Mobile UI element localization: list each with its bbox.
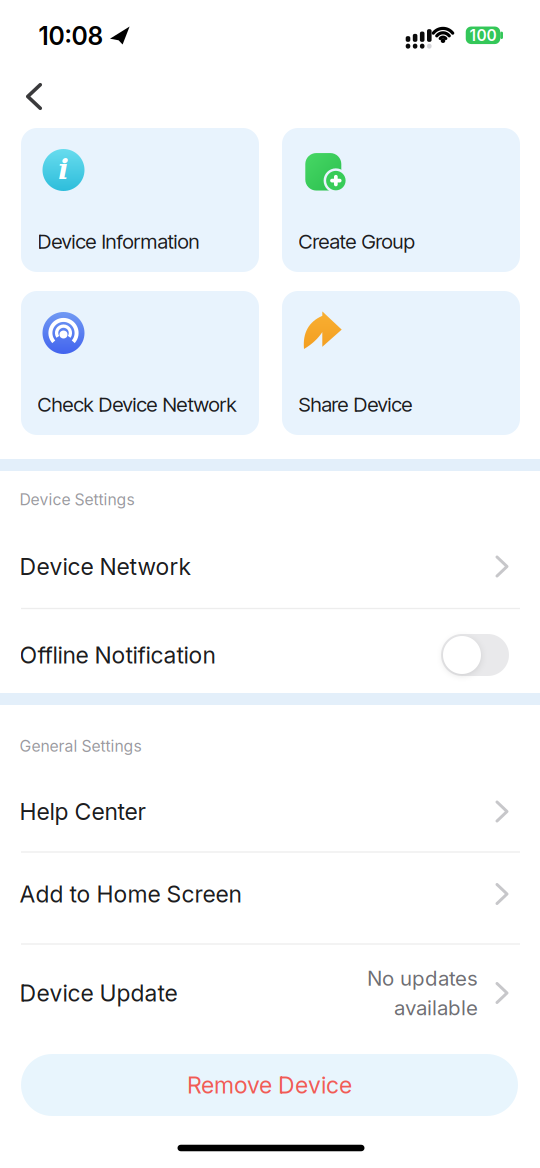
staticText: Share Device — [298, 392, 412, 416]
staticText: Device Update — [19, 979, 177, 1007]
button[interactable]: Create Group — [282, 128, 520, 272]
staticText: Add to Home Screen — [19, 880, 241, 908]
staticText: Check Device Network — [37, 392, 236, 416]
staticText: Remove Device — [187, 1071, 352, 1099]
staticText: Help Center — [19, 797, 145, 825]
button[interactable]: Back — [16, 73, 52, 120]
staticText: General Settings — [19, 736, 141, 755]
staticText: Device Network — [19, 552, 190, 580]
staticText: i — [58, 152, 69, 186]
staticText: Device Settings — [19, 490, 134, 509]
button[interactable]: Offline Notification toggle — [441, 634, 509, 676]
staticText: 10:08 — [38, 21, 103, 51]
staticText: Device Information — [37, 229, 199, 253]
button[interactable]: Add to Home Screen — [0, 852, 540, 936]
button[interactable]: i — [21, 128, 259, 272]
staticText: 100 — [469, 26, 496, 45]
button[interactable]: Offline Notification — [0, 612, 540, 697]
staticText: Create Group — [298, 229, 414, 253]
button[interactable]: Device Update — [0, 945, 540, 1041]
staticText: Offline Notification — [19, 641, 215, 669]
staticText: available — [394, 995, 478, 1020]
staticText: No updates — [367, 966, 478, 991]
button[interactable]: Remove Device — [21, 1054, 518, 1116]
button[interactable]: Check Device Network — [21, 291, 259, 435]
button[interactable]: Device Network — [0, 524, 540, 608]
button[interactable]: Help Center — [0, 769, 540, 853]
button[interactable]: Share Device — [282, 291, 520, 435]
